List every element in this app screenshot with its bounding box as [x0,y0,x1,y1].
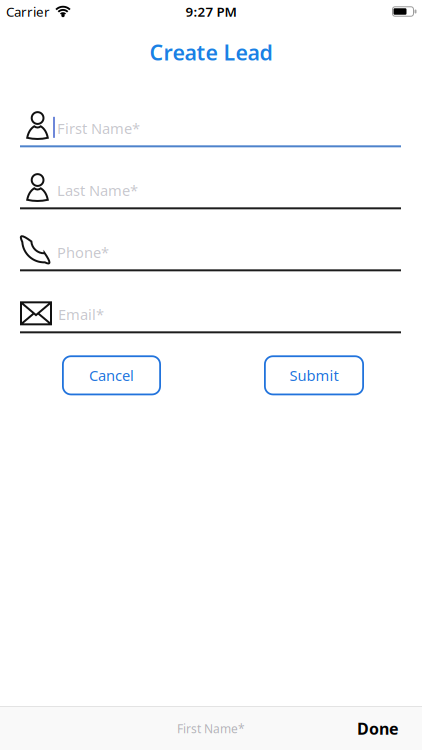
button[interactable]: Email* [0,297,422,333]
staticText: First Name* [57,119,140,138]
button[interactable]: Last Name* [0,173,422,209]
staticText: First Name* [177,720,245,736]
staticText: Cancel [89,366,134,385]
staticText: Last Name* [57,181,138,200]
button[interactable]: Phone* [0,235,422,271]
staticText: Create Lead [149,38,272,66]
staticText: Submit [289,366,338,385]
button[interactable]: Cancel [62,355,161,395]
staticText: 9:27 PM [185,3,236,20]
button[interactable]: Done [357,718,422,739]
button[interactable]: Submit [264,355,364,395]
staticText: Done [357,718,399,739]
staticText: Email* [58,305,104,324]
staticText: Phone* [57,243,109,262]
staticText: Carrier [6,3,50,20]
button[interactable]: First Name* [0,111,422,147]
